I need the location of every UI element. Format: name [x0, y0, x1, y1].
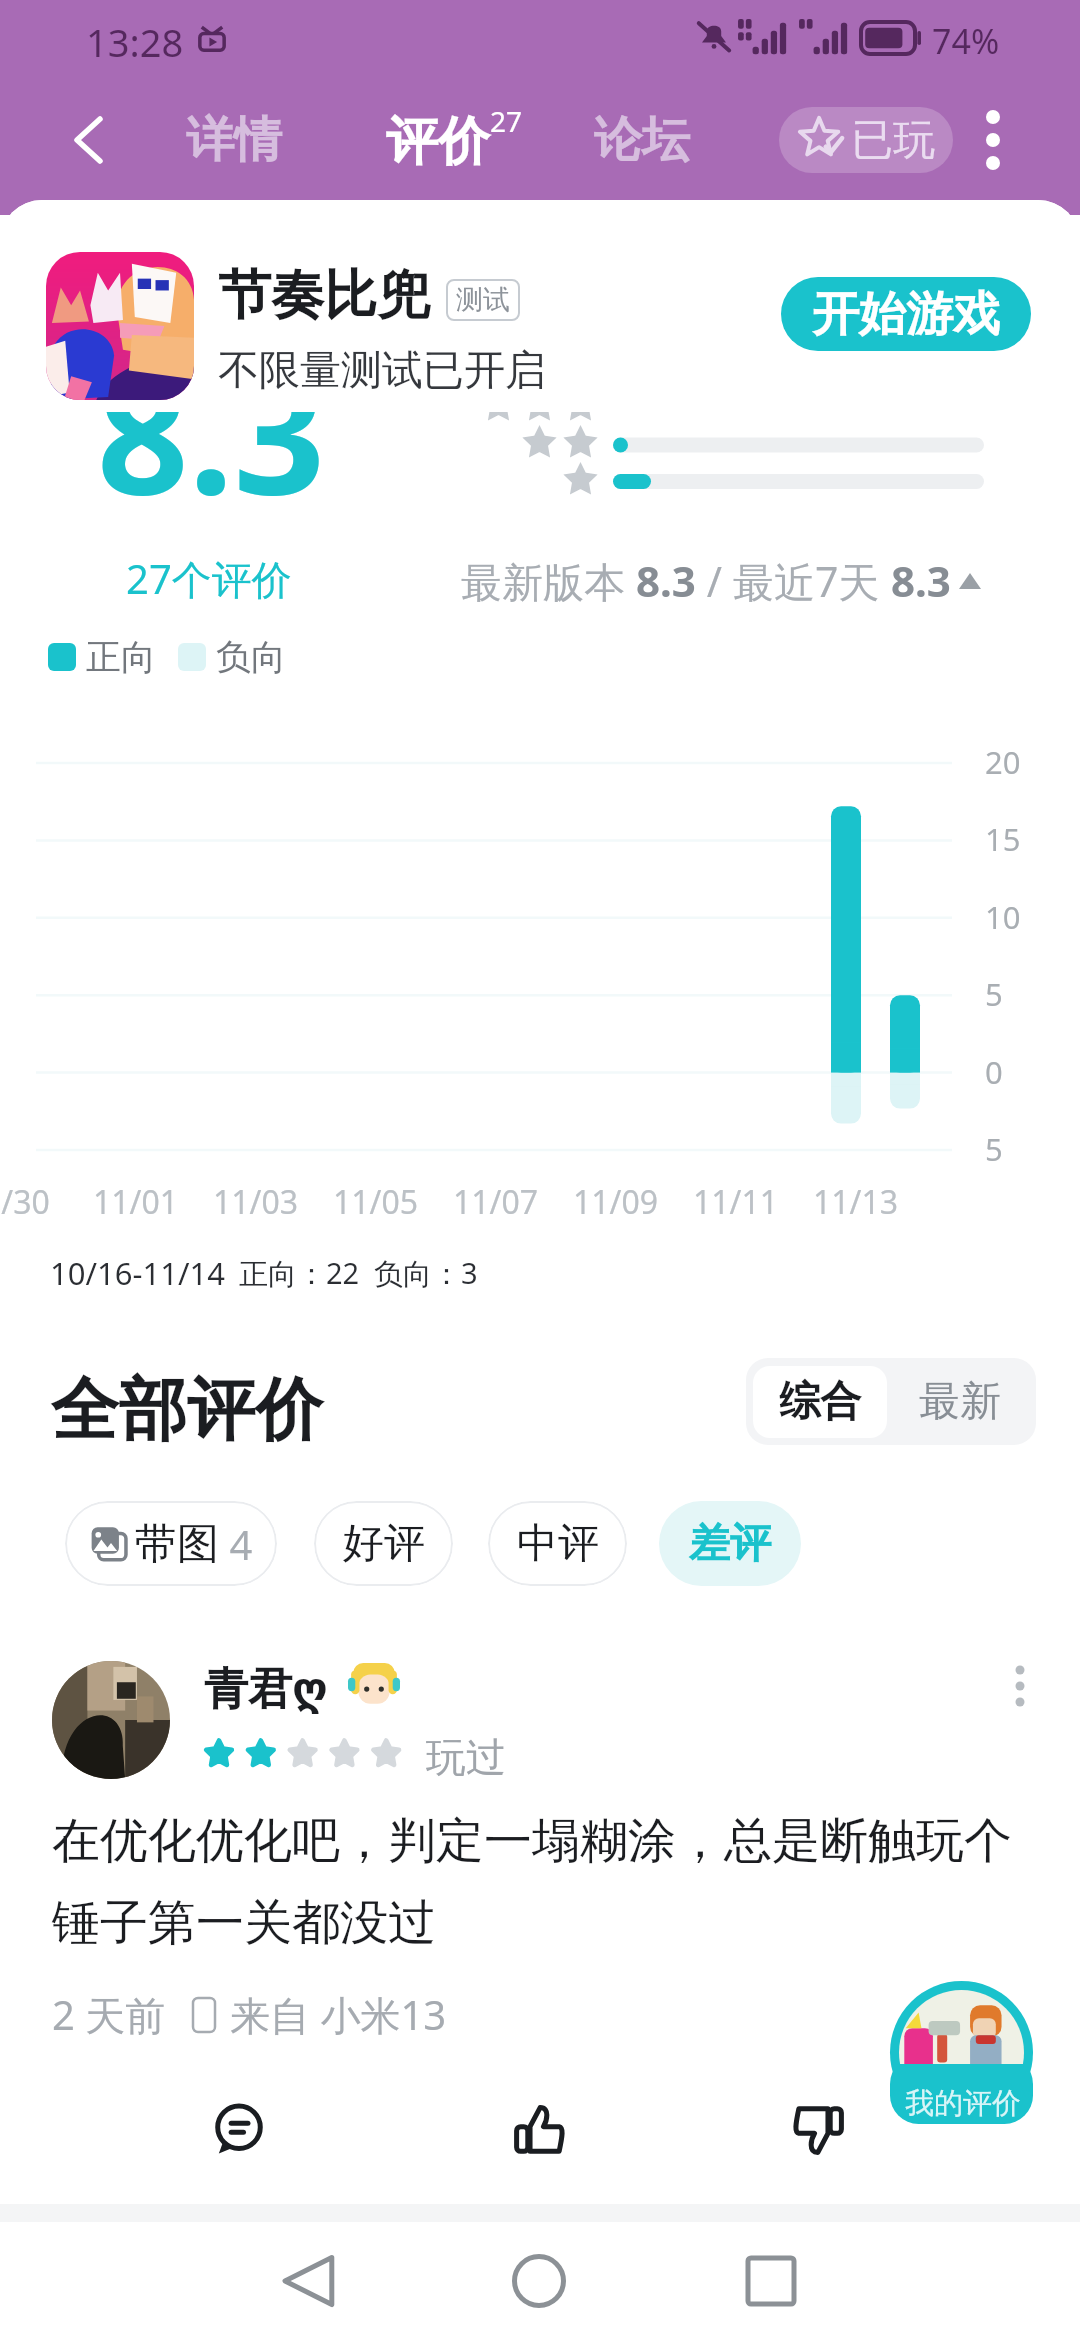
staticText: 74% [932, 18, 1000, 64]
staticText: 27 [490, 102, 523, 140]
button[interactable]: Back [36, 96, 140, 184]
staticText: 11/03 [213, 1180, 299, 1224]
staticText: / [696, 553, 733, 609]
button[interactable]: 开始游戏 [781, 277, 1031, 351]
staticText: 评价 [386, 109, 490, 175]
staticText: 15 [985, 818, 1021, 860]
staticText: 玩过 [426, 1732, 506, 1782]
staticText: 好评 [343, 1518, 425, 1570]
button[interactable]: 带图 [65, 1501, 277, 1586]
staticText: 正向 [86, 635, 156, 679]
staticText: 10/16-11/14 [50, 1252, 225, 1294]
staticText: 详情 [186, 110, 282, 170]
staticText: 正向：22 [239, 1253, 360, 1293]
staticText: 4 [219, 1517, 253, 1571]
staticText: 中评 [517, 1518, 599, 1570]
button[interactable]: Home [479, 2222, 599, 2340]
staticText: 已玩 [851, 114, 935, 167]
button[interactable]: More [986, 1652, 1054, 1720]
staticText: 27个评价 [126, 551, 292, 606]
staticText: 20 [985, 741, 1021, 783]
staticText: 我的评价 [905, 2085, 1021, 2122]
button[interactable]: More options [948, 96, 1038, 184]
staticText: 开始游戏 [812, 285, 1000, 344]
button[interactable]: Dislike [758, 2071, 880, 2189]
staticText: 8.3 [97, 323, 326, 541]
staticText: 最新版本 [461, 553, 636, 609]
button[interactable]: 综合 [753, 1366, 887, 1438]
button[interactable]: Like [478, 2071, 600, 2189]
staticText: 负向 [216, 635, 286, 679]
button[interactable]: Recents [711, 2222, 831, 2340]
staticText: 不限量测试已开启 [218, 345, 546, 397]
staticText: 11/07 [453, 1180, 539, 1224]
staticText: 11/01 [93, 1180, 179, 1224]
staticText: 2 天前 [52, 1987, 166, 2042]
button[interactable]: 论坛 [558, 96, 726, 184]
staticText: 论坛 [594, 110, 690, 170]
button[interactable]: 中评 [488, 1501, 627, 1586]
button[interactable]: 已玩 [779, 107, 953, 173]
staticText: 最近7天 [733, 553, 891, 609]
staticText: 8.3 [891, 552, 951, 609]
staticText: 综合 [779, 1376, 861, 1428]
staticText: 11/09 [573, 1180, 659, 1224]
button[interactable]: Back [249, 2222, 369, 2340]
staticText: 10 [985, 896, 1021, 938]
button[interactable]: 差评 [659, 1501, 801, 1586]
button[interactable]: 好评 [314, 1501, 453, 1586]
staticText: 来自 小米13 [230, 1987, 447, 2042]
staticText: 全部评价 [51, 1368, 323, 1454]
staticText: 11/13 [813, 1180, 899, 1224]
staticText: 0 [985, 1051, 1003, 1093]
staticText: 带图 [135, 1518, 219, 1571]
staticText: 8.3 [636, 552, 696, 609]
staticText: 13:28 [86, 16, 184, 68]
staticText: 测试 [456, 283, 510, 317]
staticText: 青君ღ [204, 1662, 328, 1717]
button[interactable]: 评价 [360, 96, 535, 184]
staticText: 最新 [919, 1376, 1001, 1428]
button[interactable]: Comment [178, 2071, 300, 2189]
button[interactable]: 最新 [891, 1366, 1029, 1438]
staticText: 差评 [689, 1518, 771, 1570]
button[interactable]: 详情 [150, 96, 318, 184]
staticText: 5 [985, 973, 1003, 1015]
button[interactable]: My review [890, 1981, 1033, 2124]
staticText: 节奏比兜 [218, 262, 430, 329]
staticText: 11/11 [693, 1180, 779, 1224]
staticText: 11/05 [333, 1180, 419, 1224]
staticText: 负向：3 [374, 1253, 478, 1293]
staticText: 在优化优化吧，判定一塌糊涂，总是断触玩个锤子第一关都没过 [52, 1811, 1042, 1953]
staticText: 5 [985, 1128, 1003, 1170]
staticText: 0/30 [0, 1180, 50, 1224]
